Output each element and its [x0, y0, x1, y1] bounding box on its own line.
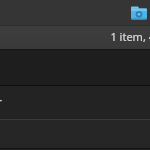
staticText: 1 item, 4 [110, 29, 150, 44]
button[interactable]: r [0, 86, 150, 119]
staticText: r [0, 94, 2, 110]
button[interactable]: 1 item, 4 [0, 26, 150, 49]
button[interactable]: Open folder [130, 4, 148, 22]
